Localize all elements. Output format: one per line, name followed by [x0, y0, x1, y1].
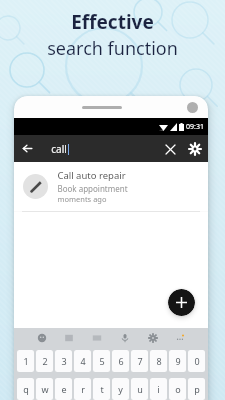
staticText: 09:31 — [186, 122, 204, 132]
staticText: p — [194, 383, 200, 395]
staticText: t — [100, 383, 104, 395]
staticText: Call auto repair — [57, 169, 126, 182]
staticText: 2 — [42, 355, 48, 367]
button[interactable]: u — [131, 378, 148, 400]
staticText: e — [61, 383, 67, 395]
staticText: r — [81, 383, 85, 395]
button[interactable]: w — [36, 378, 53, 400]
button[interactable]: Add — [168, 289, 195, 316]
button[interactable]: e — [55, 378, 72, 400]
staticText: 1 — [23, 355, 29, 367]
staticText: o — [175, 383, 181, 395]
button[interactable]: p — [188, 378, 205, 400]
button[interactable]: o — [169, 378, 186, 400]
button[interactable]: 0 — [188, 350, 205, 372]
button[interactable]: 9 — [169, 350, 186, 372]
staticText: w — [41, 383, 49, 395]
staticText: 9 — [175, 355, 181, 367]
button[interactable]: i — [150, 378, 167, 400]
staticText: moments ago — [57, 194, 107, 204]
staticText: y — [118, 383, 123, 395]
staticText: Effective — [71, 9, 154, 35]
staticText: q — [23, 383, 29, 395]
button[interactable]: Call auto repair — [14, 162, 208, 211]
staticText: search function — [47, 36, 178, 61]
button[interactable]: More options — [172, 330, 188, 346]
staticText: i — [157, 383, 160, 395]
button[interactable]: 6 — [112, 350, 129, 372]
button[interactable]: Keyboard settings — [145, 330, 161, 346]
button[interactable]: Back — [14, 135, 41, 162]
staticText: call — [51, 142, 67, 156]
button[interactable]: 7 — [131, 350, 148, 372]
button[interactable]: 8 — [150, 350, 167, 372]
button[interactable]: 4 — [74, 350, 91, 372]
button[interactable]: Clear — [158, 137, 182, 161]
button[interactable]: 5 — [93, 350, 110, 372]
staticText: 3 — [61, 355, 67, 367]
staticText: 4 — [80, 355, 86, 367]
button[interactable]: Emoji — [34, 330, 50, 346]
button[interactable]: GIF — [89, 330, 105, 346]
staticText: u — [137, 383, 143, 395]
staticText: 5 — [99, 355, 105, 367]
staticText: 0 — [194, 355, 200, 367]
button[interactable]: Settings — [182, 136, 208, 162]
staticText: 6 — [118, 355, 124, 367]
button[interactable]: t — [93, 378, 110, 400]
staticText: Book appointment — [57, 183, 128, 194]
button[interactable]: 1 — [17, 350, 34, 372]
button[interactable]: q — [17, 378, 34, 400]
button[interactable]: 2 — [36, 350, 53, 372]
staticText: 7 — [137, 355, 143, 367]
button[interactable]: Stickers — [61, 330, 77, 346]
button[interactable]: Voice input — [117, 330, 133, 346]
button[interactable]: y — [112, 378, 129, 400]
button[interactable]: 3 — [55, 350, 72, 372]
button[interactable]: r — [74, 378, 91, 400]
staticText: 8 — [156, 355, 162, 367]
